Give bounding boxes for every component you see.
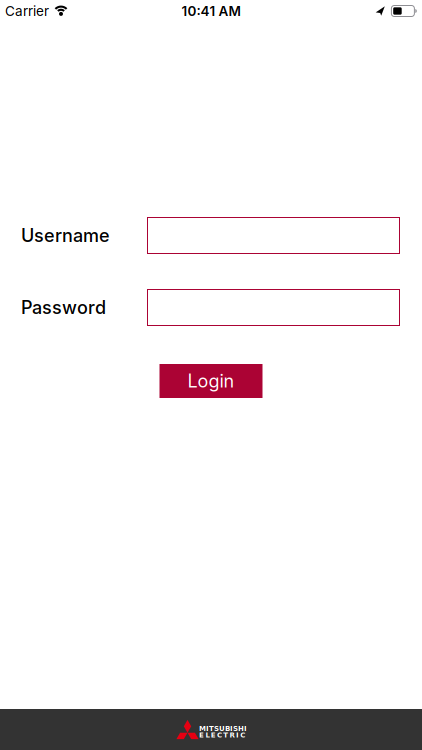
button[interactable]: Password [147,289,400,326]
staticText: Password [21,297,106,318]
button[interactable]: Login [159,364,262,398]
staticText: ELECTRIC [199,730,245,739]
staticText: MITSUBISHI [199,724,247,733]
staticText: Username [21,225,110,246]
button[interactable]: Username [147,217,400,254]
staticText: Login [187,370,234,392]
staticText: Carrier [5,3,49,19]
staticText: 10:41 AM [181,3,240,19]
